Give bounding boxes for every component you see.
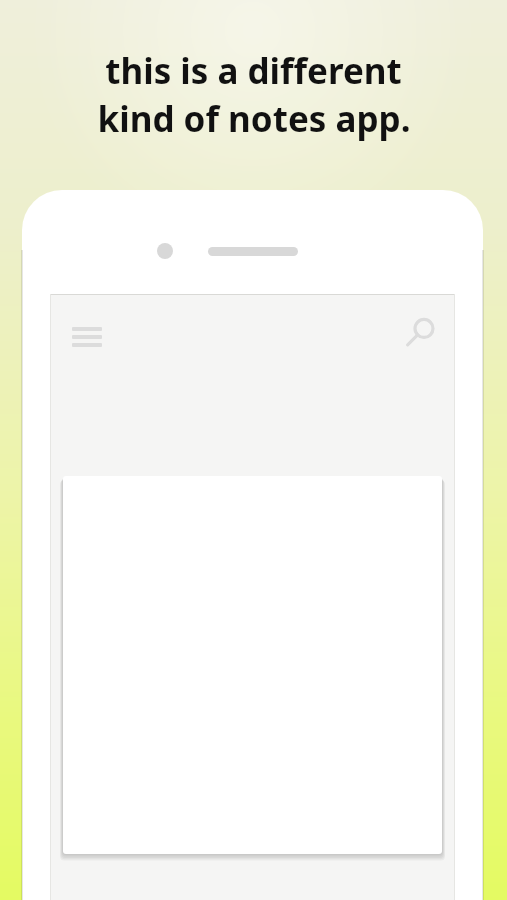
staticText: this is a different bbox=[105, 47, 402, 95]
staticText: kind of notes app. bbox=[97, 95, 411, 143]
button[interactable]: Search bbox=[397, 308, 445, 356]
button[interactable]: Menu bbox=[62, 312, 112, 362]
